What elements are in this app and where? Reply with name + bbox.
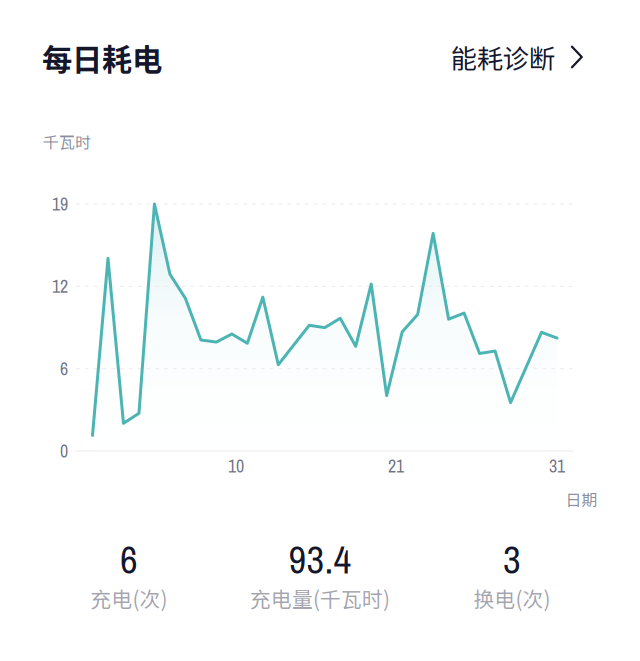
staticText: 6 [60, 356, 68, 381]
button[interactable]: 能耗诊断 [443, 28, 591, 86]
staticText: 能耗诊断 [451, 38, 555, 76]
staticText: 3 [503, 533, 521, 586]
staticText: 6 [120, 533, 138, 586]
staticText: 12 [52, 274, 68, 298]
staticText: 10 [228, 454, 244, 478]
staticText: 充电量(千瓦时) [250, 583, 390, 613]
staticText: 每日耗电 [42, 36, 162, 79]
staticText: 千瓦时 [43, 130, 91, 153]
staticText: 充电(次) [90, 583, 167, 613]
staticText: 31 [549, 454, 565, 478]
button[interactable]: 3 [424, 542, 600, 611]
button[interactable]: 93.4 [232, 542, 408, 611]
staticText: 93.4 [288, 533, 351, 586]
staticText: 19 [52, 192, 68, 216]
staticText: 21 [388, 454, 404, 478]
button[interactable]: 6 [41, 542, 217, 611]
staticText: 换电(次) [473, 583, 550, 613]
staticText: 日期 [565, 487, 597, 511]
staticText: 0 [60, 439, 68, 463]
